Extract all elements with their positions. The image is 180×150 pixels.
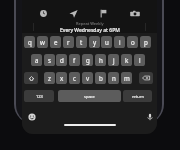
- button[interactable]: o: [127, 36, 138, 48]
- staticText: r: [67, 38, 70, 46]
- staticText: Every Wednesday at 6PM: [60, 27, 120, 34]
- button[interactable]: u: [101, 36, 112, 48]
- staticText: h: [99, 56, 103, 64]
- staticText: 123: [36, 94, 43, 99]
- button[interactable]: Flag: [99, 9, 108, 18]
- button[interactable]: p: [140, 36, 151, 48]
- staticText: j: [113, 56, 115, 64]
- staticText: c: [73, 74, 76, 82]
- staticText: v: [86, 74, 90, 82]
- button[interactable]: j: [108, 54, 119, 66]
- button[interactable]: v: [82, 72, 93, 84]
- staticText: e: [54, 38, 58, 46]
- staticText: o: [131, 38, 135, 46]
- button[interactable]: Emoji: [28, 113, 36, 121]
- button[interactable]: z: [44, 72, 55, 84]
- button[interactable]: w: [37, 36, 48, 48]
- staticText: m: [124, 74, 130, 82]
- button[interactable]: e: [50, 36, 61, 48]
- button[interactable]: b: [95, 72, 106, 84]
- staticText: f: [73, 56, 76, 64]
- staticText: space: [84, 94, 95, 99]
- staticText: g: [86, 56, 90, 64]
- button[interactable]: h: [95, 54, 106, 66]
- staticText: return: [132, 94, 144, 99]
- staticText: t: [80, 38, 83, 46]
- button[interactable]: y: [89, 36, 100, 48]
- button[interactable]: s: [44, 54, 55, 66]
- button[interactable]: Microphone: [146, 113, 154, 121]
- staticText: q: [28, 38, 32, 46]
- button[interactable]: 123: [24, 90, 54, 102]
- button[interactable]: t: [76, 36, 87, 48]
- button[interactable]: Camera: [130, 9, 140, 19]
- button[interactable]: return: [123, 90, 152, 102]
- staticText: i: [119, 38, 121, 46]
- staticText: k: [125, 56, 129, 64]
- staticText: n: [112, 74, 116, 82]
- staticText: p: [144, 38, 148, 46]
- staticText: w: [40, 38, 45, 46]
- button[interactable]: c: [69, 72, 80, 84]
- staticText: z: [48, 74, 51, 82]
- button[interactable]: g: [82, 54, 93, 66]
- button[interactable]: Send: [69, 9, 78, 18]
- button[interactable]: i: [114, 36, 125, 48]
- staticText: l: [139, 56, 141, 64]
- button[interactable]: Backspace: [139, 72, 153, 84]
- button[interactable]: l: [134, 54, 145, 66]
- button[interactable]: m: [121, 72, 132, 84]
- button[interactable]: x: [56, 72, 67, 84]
- button[interactable]: r: [63, 36, 74, 48]
- button[interactable]: q: [24, 36, 35, 48]
- staticText: u: [105, 38, 109, 46]
- staticText: Repeat Weekly: [76, 21, 104, 26]
- staticText: x: [60, 74, 64, 82]
- button[interactable]: d: [56, 54, 67, 66]
- button[interactable]: space: [58, 90, 121, 102]
- staticText: s: [48, 56, 51, 64]
- button[interactable]: a: [31, 54, 42, 66]
- staticText: y: [93, 38, 97, 46]
- staticText: d: [60, 56, 64, 64]
- button[interactable]: f: [69, 54, 80, 66]
- button[interactable]: Clock: [39, 9, 48, 18]
- staticText: a: [35, 56, 39, 64]
- button[interactable]: n: [108, 72, 119, 84]
- button[interactable]: Shift: [24, 72, 38, 84]
- staticText: b: [99, 74, 103, 82]
- button[interactable]: k: [121, 54, 132, 66]
